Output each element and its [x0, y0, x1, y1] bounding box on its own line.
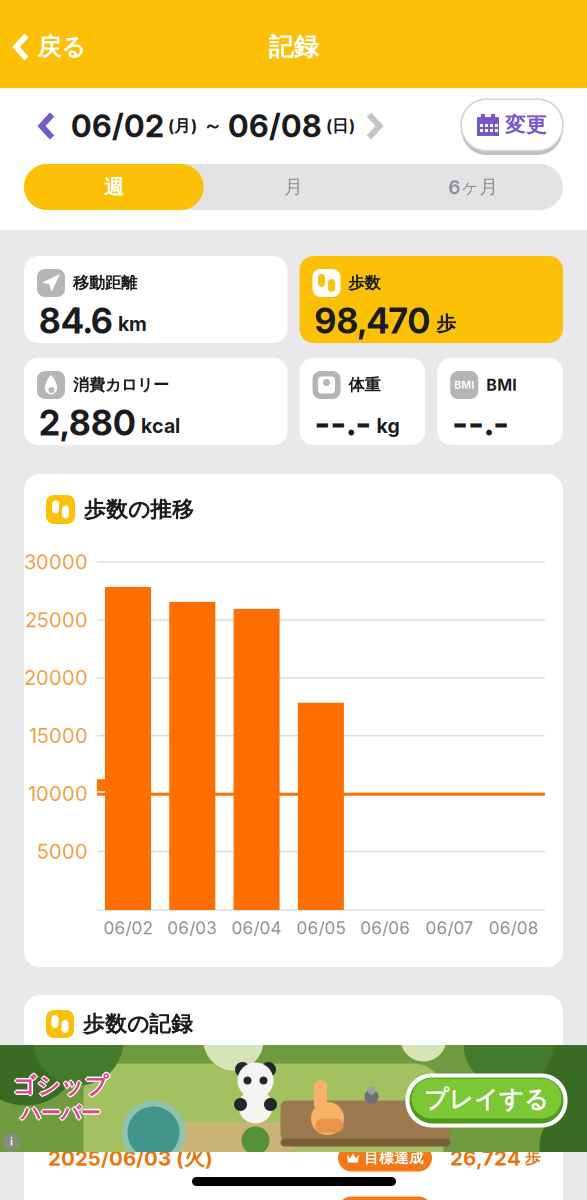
button[interactable]: 移動距離: [24, 256, 287, 343]
staticText: 06/08: [489, 918, 539, 938]
staticText: 98,470: [314, 300, 430, 342]
staticText: ゴシップ: [12, 1071, 108, 1100]
button[interactable]: 2025/06/03 (火): [24, 1134, 563, 1182]
button[interactable]: 広告: ゴシップハーバー プレイする: [0, 1045, 587, 1152]
staticText: kg: [371, 414, 399, 438]
button[interactable]: 体重: [299, 358, 425, 445]
staticText: ～: [197, 114, 228, 138]
staticText: 84.6: [39, 300, 113, 342]
button[interactable]: 前の週: [38, 112, 55, 140]
staticText: BMI: [486, 375, 516, 395]
staticText: 15000: [29, 724, 88, 748]
staticText: 06/07: [425, 918, 473, 938]
staticText: ゴシップ: [12, 1073, 108, 1102]
staticText: 06/06: [360, 918, 410, 938]
staticText: 移動距離: [73, 273, 137, 293]
staticText: 06/05: [296, 918, 345, 938]
staticText: km: [113, 312, 147, 336]
staticText: BMI: [454, 379, 474, 391]
staticText: 06/02: [71, 107, 164, 145]
staticText: ハーバー: [20, 1102, 100, 1127]
staticText: 月: [284, 175, 303, 199]
staticText: ハーバー: [19, 1100, 99, 1126]
staticText: ゴシップ: [11, 1071, 107, 1100]
staticText: 消費カロリー: [73, 375, 169, 395]
staticText: 2025/06/03 (火): [48, 1145, 213, 1171]
button[interactable]: 消費カロリー: [24, 358, 287, 445]
staticText: 記録: [268, 31, 318, 63]
staticText: ハーバー: [20, 1099, 100, 1124]
staticText: ゴシップ: [12, 1070, 108, 1099]
button[interactable]: 6ヶ月: [383, 164, 563, 210]
staticText: --.-: [314, 402, 371, 444]
staticText: 06/02: [103, 918, 152, 938]
button[interactable]: BMI: [437, 358, 563, 445]
button[interactable]: 2025/06/02 (月): [24, 1186, 563, 1200]
staticText: 20000: [24, 666, 88, 690]
staticText: ハーバー: [22, 1100, 102, 1126]
button[interactable]: 週: [24, 164, 204, 210]
button[interactable]: 戻る: [0, 32, 86, 62]
staticText: プレイする: [424, 1084, 549, 1115]
staticText: 06/08: [228, 107, 322, 145]
staticText: 歩: [525, 1148, 541, 1168]
staticText: 目標達成: [364, 1149, 424, 1167]
staticText: 歩数: [348, 273, 380, 293]
staticText: 歩数の記録: [83, 1010, 193, 1038]
staticText: 2,880: [39, 402, 136, 444]
staticText: 06/04: [232, 918, 282, 938]
button[interactable]: 歩数: [299, 256, 563, 343]
button[interactable]: 月: [204, 164, 383, 210]
staticText: (日): [322, 116, 355, 136]
staticText: 変更: [505, 112, 547, 138]
button[interactable]: 次の週: [365, 112, 382, 140]
staticText: 歩数の推移: [84, 496, 194, 523]
staticText: 5000: [37, 839, 88, 864]
staticText: ゴシップ: [14, 1071, 110, 1100]
button[interactable]: 変更: [460, 96, 563, 154]
staticText: 6ヶ月: [448, 175, 498, 199]
staticText: 30000: [24, 550, 88, 574]
staticText: (月): [164, 116, 197, 136]
staticText: 10000: [28, 781, 88, 806]
staticText: i: [10, 1135, 13, 1148]
staticText: 歩: [430, 312, 456, 336]
staticText: 戻る: [37, 32, 86, 62]
staticText: 06/03: [167, 918, 217, 938]
staticText: ハーバー: [20, 1100, 100, 1126]
staticText: 25000: [25, 608, 88, 632]
staticText: 週: [104, 174, 124, 200]
staticText: --.-: [452, 402, 509, 444]
staticText: kcal: [136, 414, 180, 438]
staticText: 体重: [348, 375, 380, 395]
staticText: 26,724: [450, 1146, 521, 1170]
